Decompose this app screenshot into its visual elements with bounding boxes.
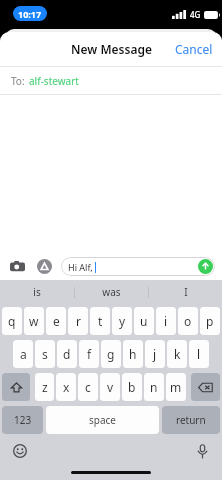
staticText: To: (11, 74, 25, 88)
button[interactable]: Backspace (191, 373, 220, 401)
staticText: z (42, 379, 48, 395)
button[interactable]: s (35, 340, 55, 368)
staticText: f (87, 346, 92, 362)
button[interactable]: Shift (2, 373, 30, 401)
button[interactable]: I (149, 280, 222, 304)
staticText: j (153, 346, 157, 362)
staticText: y (119, 313, 126, 329)
staticText: n (150, 379, 158, 395)
button[interactable]: z (35, 373, 54, 401)
staticText: v (107, 379, 114, 395)
staticText: s (42, 346, 48, 362)
button[interactable]: Dictation (191, 440, 213, 462)
button[interactable]: x (56, 373, 76, 401)
staticText: b (128, 379, 136, 395)
staticText: k (174, 346, 181, 362)
staticText: Cancel (175, 41, 213, 57)
button[interactable]: i (156, 307, 176, 335)
button[interactable]: 123 (2, 406, 43, 434)
button[interactable]: return (162, 406, 220, 434)
staticText: I (184, 285, 188, 299)
staticText: p (206, 313, 214, 329)
staticText: c (85, 379, 91, 395)
button[interactable]: y (112, 307, 132, 335)
button[interactable]: m (166, 373, 186, 401)
staticText: was (102, 285, 121, 299)
staticText: alf-stewart (29, 74, 79, 88)
button[interactable]: space (46, 406, 159, 434)
staticText: r (76, 313, 81, 329)
button[interactable]: f (79, 340, 99, 368)
button[interactable]: n (144, 373, 164, 401)
staticText: is (33, 285, 41, 299)
button[interactable]: e (46, 307, 66, 335)
button[interactable]: c (78, 373, 98, 401)
staticText: 123 (14, 413, 32, 427)
staticText: d (63, 346, 71, 362)
button[interactable]: h (123, 340, 143, 368)
staticText: x (63, 379, 70, 395)
staticText: 10:17 (18, 8, 42, 20)
button[interactable]: Cancel (166, 34, 222, 64)
button[interactable]: j (145, 340, 165, 368)
button[interactable]: was (75, 280, 148, 304)
button[interactable]: t (90, 307, 110, 335)
button[interactable]: Send (198, 259, 213, 274)
button[interactable]: o (178, 307, 198, 335)
button[interactable]: is (0, 280, 74, 304)
staticText: g (107, 346, 115, 362)
staticText: u (140, 313, 148, 329)
staticText: w (29, 313, 39, 329)
staticText: t (98, 313, 103, 329)
staticText: e (53, 313, 60, 329)
button[interactable]: u (134, 307, 154, 335)
staticText: space (89, 413, 116, 427)
button[interactable]: p (200, 307, 220, 335)
button[interactable]: w (24, 307, 44, 335)
button[interactable]: b (122, 373, 142, 401)
button[interactable]: To: (0, 67, 222, 94)
button[interactable]: Hi Alf, (61, 257, 215, 276)
button[interactable]: Camera (7, 256, 27, 276)
staticText: m (170, 379, 182, 395)
button[interactable]: k (167, 340, 187, 368)
button[interactable]: g (101, 340, 121, 368)
staticText: 4G (190, 9, 201, 20)
button[interactable]: a (13, 340, 33, 368)
button[interactable]: v (100, 373, 120, 401)
staticText: o (184, 313, 192, 329)
staticText: New Message (71, 41, 152, 57)
staticText: return (176, 413, 206, 427)
staticText: Hi Alf, (68, 261, 93, 273)
staticText: i (164, 313, 168, 329)
staticText: l (197, 346, 201, 362)
button[interactable]: q (2, 307, 22, 335)
button[interactable]: Recording indicator (13, 6, 47, 21)
button[interactable]: l (189, 340, 209, 368)
button[interactable]: App Store (34, 256, 54, 276)
staticText: h (129, 346, 137, 362)
staticText: a (20, 346, 27, 362)
staticText: q (8, 313, 16, 329)
button[interactable]: Emoji (9, 440, 31, 462)
button[interactable]: d (57, 340, 77, 368)
button[interactable]: r (68, 307, 88, 335)
